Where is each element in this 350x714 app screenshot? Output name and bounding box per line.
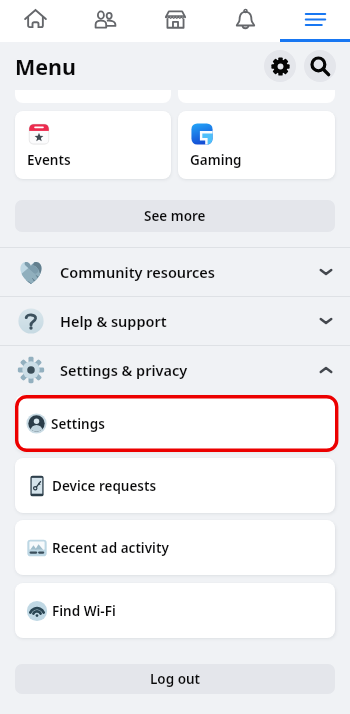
staticText: Settings & privacy [60,360,320,380]
button[interactable]: Gaming [178,111,335,179]
staticText: Gaming [190,151,242,169]
button[interactable]: Recent ad activity [15,520,335,575]
button[interactable]: Search [304,50,336,82]
staticText: Events [27,151,71,169]
button[interactable]: Marketplace [140,0,210,39]
button[interactable]: Events [15,111,171,179]
staticText: Settings [51,415,105,433]
staticText: Recent ad activity [52,539,169,557]
staticText: Log out [150,670,201,688]
button[interactable]: Device requests [15,458,335,513]
button[interactable]: Notifications [210,0,280,39]
button[interactable]: Find Wi-Fi [15,583,335,638]
staticText: Community resources [60,262,320,282]
button[interactable]: Home [0,0,70,39]
staticText: Device requests [52,477,157,495]
button[interactable]: Settings [264,50,296,82]
button[interactable]: Settings [15,395,335,451]
staticText: Find Wi-Fi [52,602,116,620]
staticText: See more [144,207,206,225]
staticText: Menu [15,52,264,81]
staticText: Help & support [60,311,320,331]
button[interactable]: Community resources [0,248,350,296]
button[interactable]: Log out [15,664,335,694]
button[interactable]: Friends [70,0,140,39]
button[interactable]: Menu [280,0,350,39]
button[interactable]: Help & support [0,297,350,345]
button[interactable]: Settings & privacy [0,346,350,394]
button[interactable]: See more [15,200,335,232]
